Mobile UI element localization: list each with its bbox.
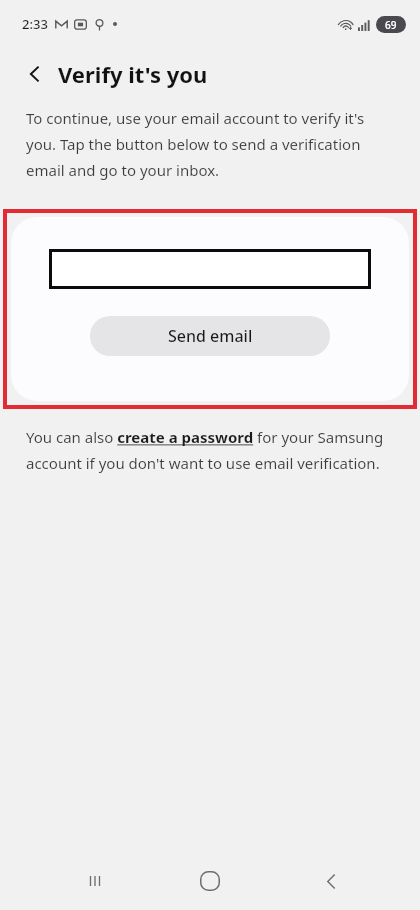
button[interactable]: Back: [308, 858, 354, 904]
button[interactable]: Home: [187, 858, 233, 904]
button[interactable]: You can also create a password for your …: [26, 427, 394, 474]
button[interactable]: Send email: [90, 316, 330, 356]
staticText: To continue, use your email account to v…: [26, 108, 394, 181]
staticText: 2:33: [22, 15, 48, 33]
staticText: 69: [385, 18, 397, 32]
staticText: Verify it's you: [58, 59, 208, 89]
button[interactable]: Back: [18, 57, 52, 91]
staticText: Send email: [168, 325, 253, 347]
button[interactable]: Email address field: [49, 249, 371, 289]
button[interactable]: Recents: [72, 858, 118, 904]
